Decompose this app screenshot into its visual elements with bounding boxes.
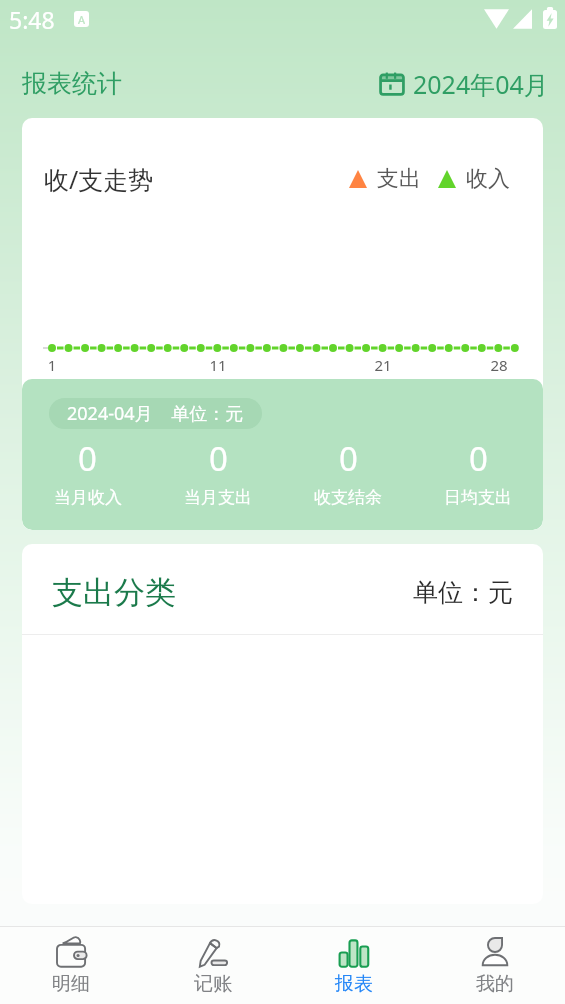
- staticText: 报表统计: [22, 68, 122, 99]
- other: Select month: [379, 71, 405, 97]
- staticText: 28: [484, 355, 514, 375]
- staticText: 单位：元: [413, 577, 513, 608]
- button[interactable]: 明细: [0, 936, 142, 996]
- staticText: 2024年04月: [413, 67, 549, 101]
- staticText: 日均支出: [444, 487, 512, 508]
- staticText: 明细: [52, 972, 90, 996]
- staticText: 记账: [194, 972, 232, 996]
- staticText: 11: [203, 355, 233, 375]
- staticText: 5:48: [9, 4, 55, 35]
- staticText: A: [78, 12, 86, 27]
- staticText: 收入: [466, 165, 510, 193]
- staticText: 21: [368, 355, 398, 375]
- staticText: 当月收入: [54, 487, 122, 508]
- button[interactable]: 报表: [283, 936, 424, 996]
- button[interactable]: 我的: [424, 936, 565, 996]
- staticText: 收支结余: [314, 487, 382, 508]
- staticText: 收/支走势: [44, 162, 154, 196]
- staticText: 0: [78, 436, 97, 481]
- staticText: 0: [339, 436, 358, 481]
- button[interactable]: Select month: [379, 67, 549, 101]
- staticText: 1: [37, 355, 67, 375]
- staticText: 我的: [476, 972, 514, 996]
- staticText: 支出分类: [52, 573, 176, 612]
- staticText: 0: [209, 436, 228, 481]
- staticText: 当月支出: [184, 487, 252, 508]
- staticText: 2024-04月 单位：元: [67, 401, 244, 426]
- button[interactable]: 记账: [142, 936, 283, 996]
- staticText: 0: [469, 436, 488, 481]
- staticText: 报表: [335, 972, 373, 996]
- staticText: 支出: [377, 165, 421, 193]
